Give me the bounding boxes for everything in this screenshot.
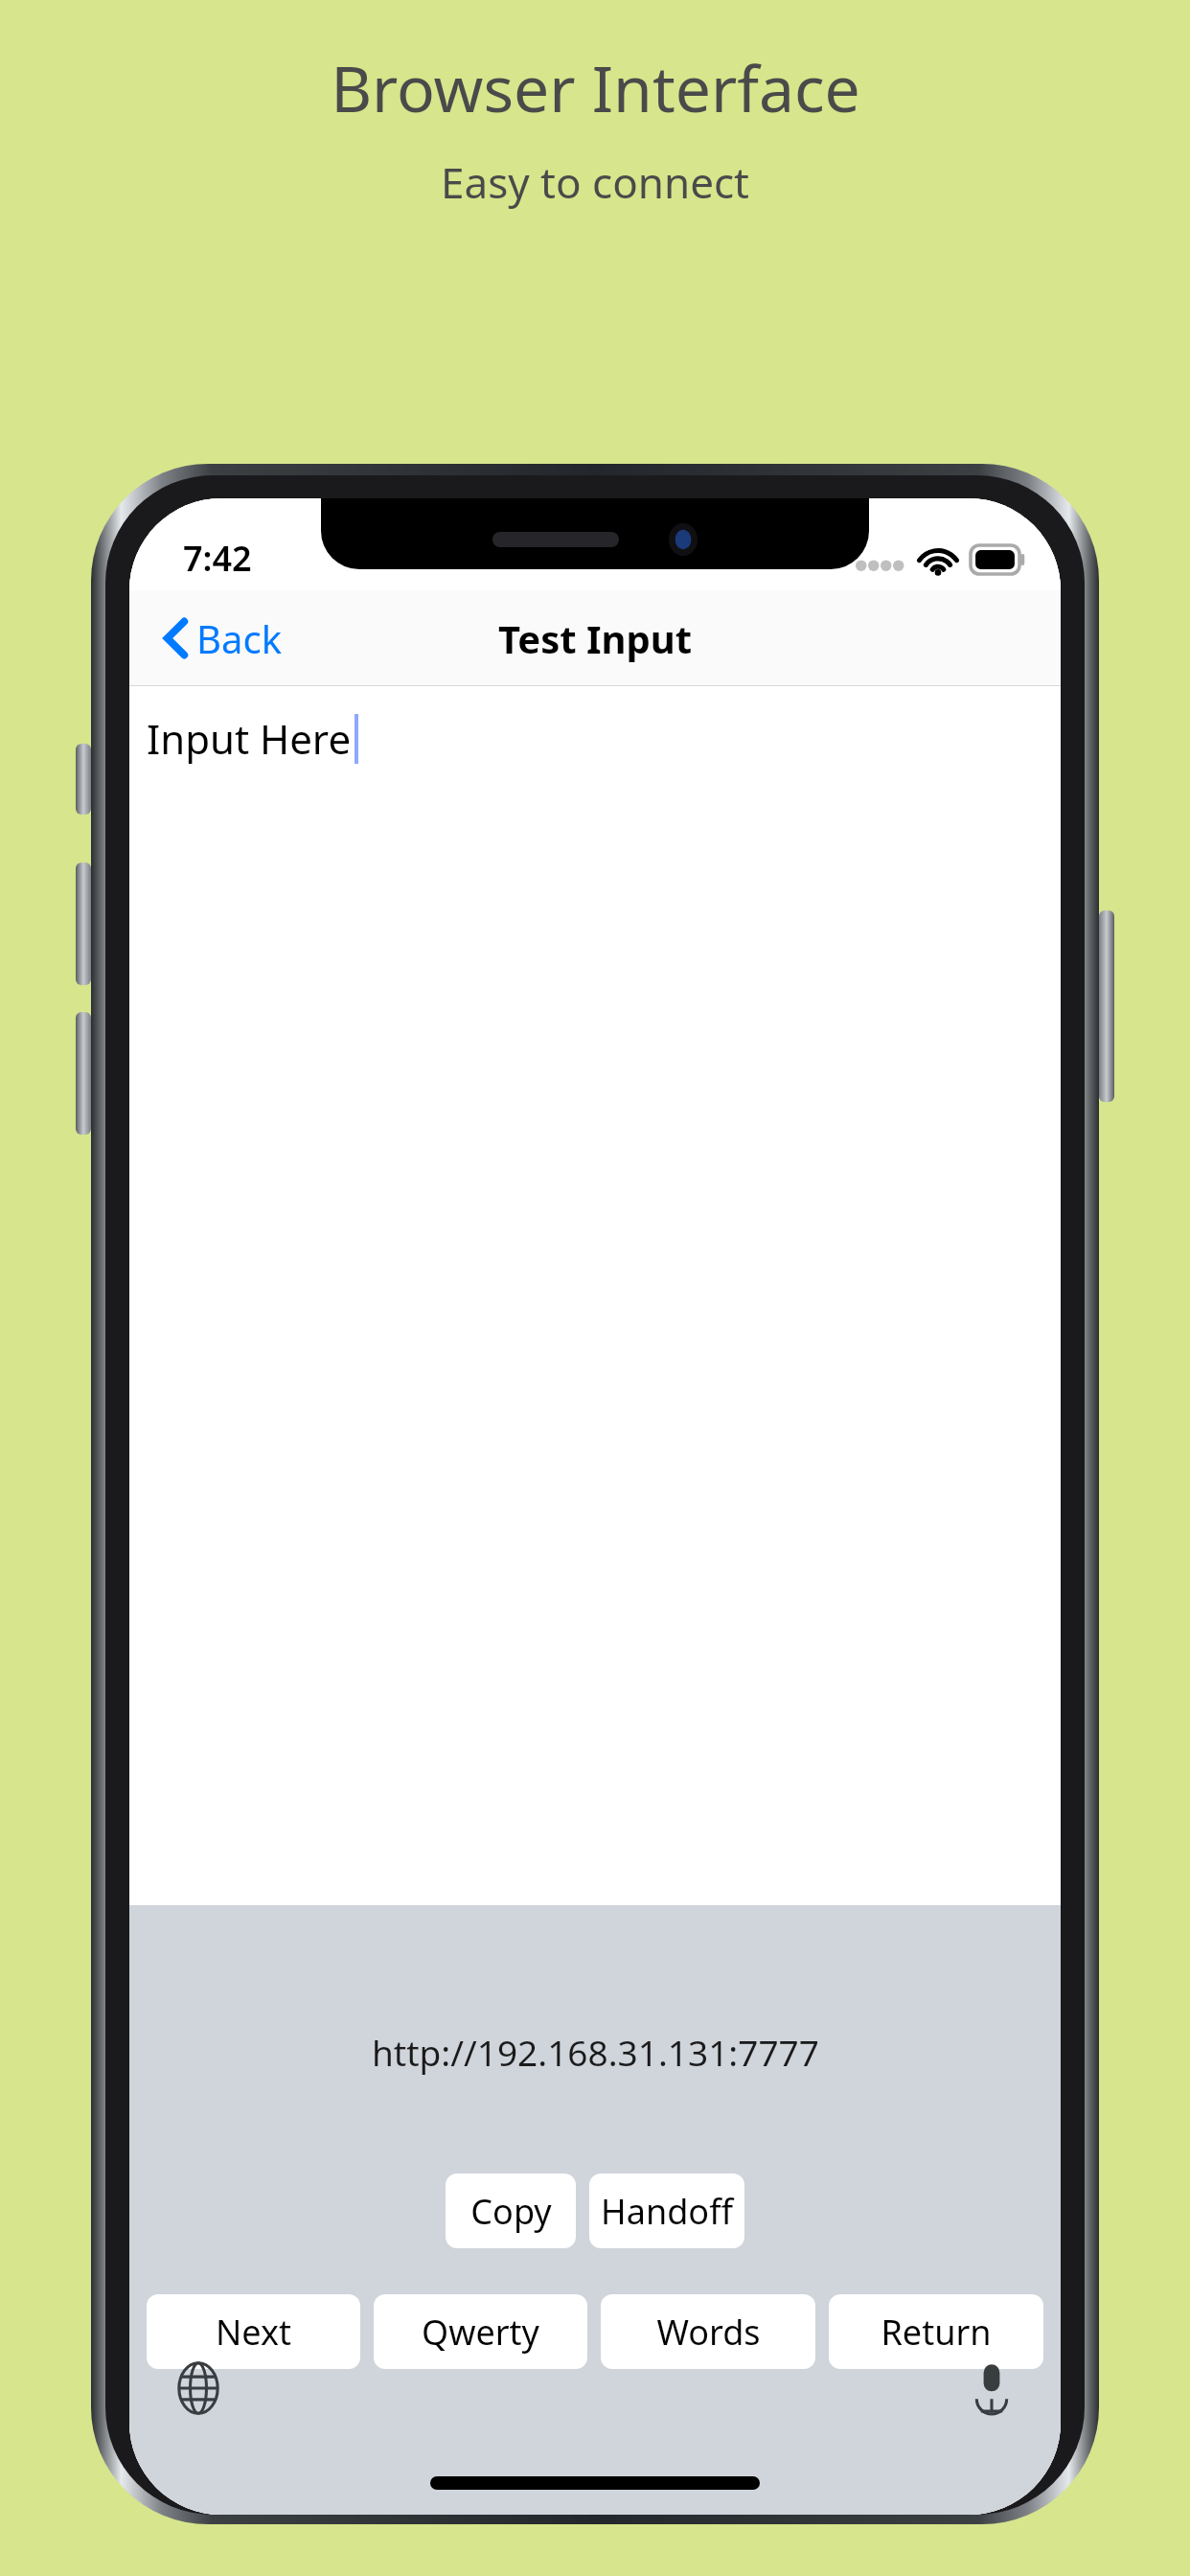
- button[interactable]: Input Here: [129, 686, 1061, 1905]
- staticText: Input Here: [147, 711, 352, 766]
- staticText: Qwerty: [422, 2309, 539, 2356]
- button[interactable]: Return: [829, 2294, 1043, 2369]
- staticText: 7:42: [183, 535, 252, 582]
- staticText: http://192.168.31.131:7777: [372, 2028, 819, 2076]
- staticText: Handoff: [601, 2188, 733, 2235]
- button[interactable]: Handoff: [589, 2173, 744, 2248]
- staticText: Return: [881, 2309, 992, 2356]
- button[interactable]: Copy: [446, 2173, 576, 2248]
- staticText: Test Input: [498, 612, 693, 664]
- button[interactable]: Switch keyboard: [162, 2352, 235, 2425]
- button[interactable]: Back: [152, 605, 293, 672]
- button[interactable]: Dictate: [955, 2352, 1028, 2425]
- staticText: Easy to connect: [441, 153, 749, 211]
- staticText: Browser Interface: [331, 44, 860, 130]
- button[interactable]: Words: [601, 2294, 815, 2369]
- staticText: Back: [196, 612, 282, 664]
- staticText: Copy: [470, 2188, 552, 2235]
- button[interactable]: Qwerty: [374, 2294, 587, 2369]
- staticText: Words: [656, 2309, 761, 2356]
- button[interactable]: Next: [147, 2294, 360, 2369]
- staticText: Next: [216, 2309, 291, 2356]
